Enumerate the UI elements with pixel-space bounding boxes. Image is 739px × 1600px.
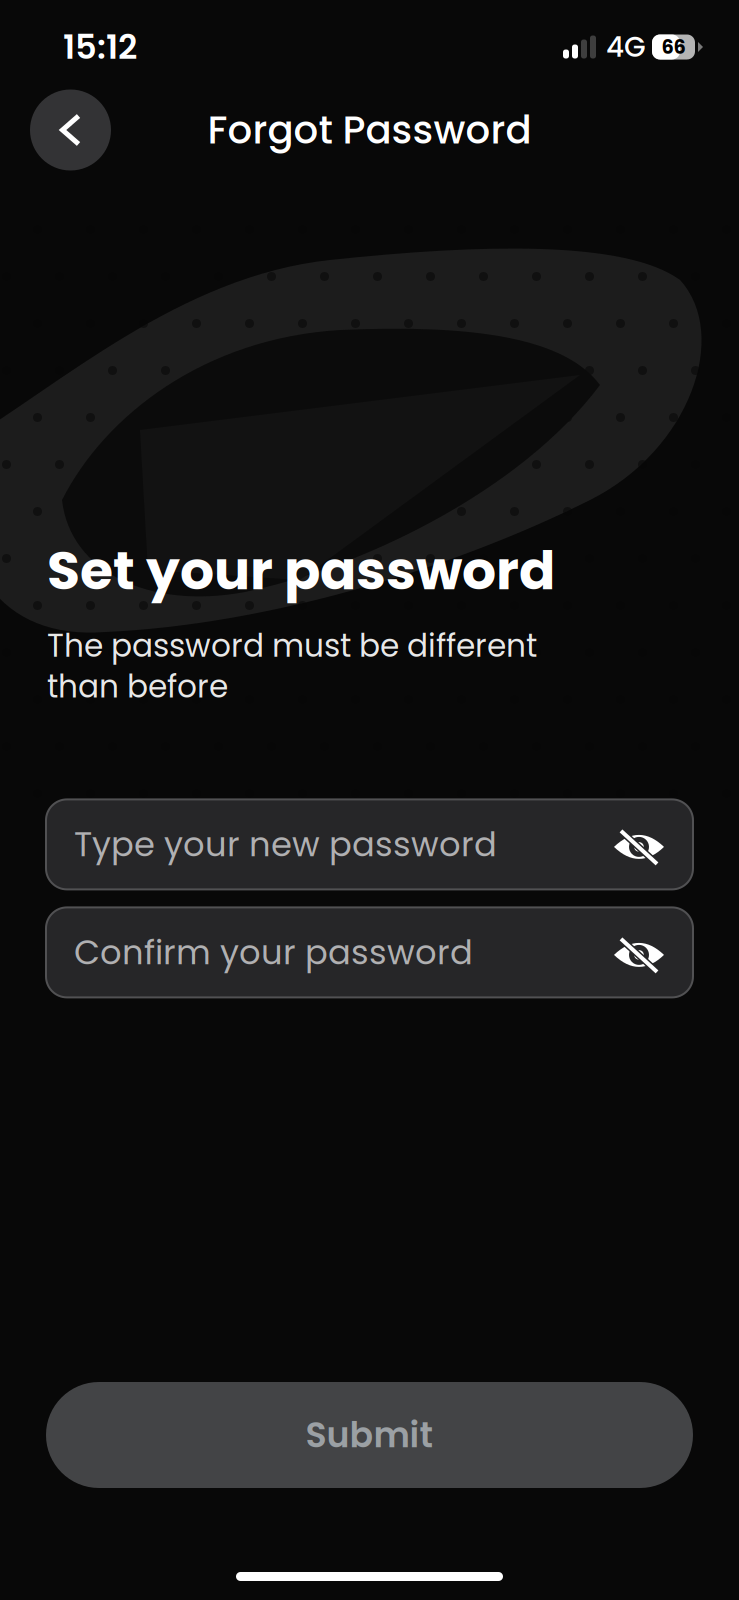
staticText: Confirm your password xyxy=(74,929,473,976)
button[interactable]: Submit xyxy=(46,1382,693,1488)
staticText: Type your new password xyxy=(74,821,497,868)
staticText: Submit xyxy=(305,1411,433,1459)
staticText: 4G xyxy=(606,27,646,67)
button[interactable]: Back xyxy=(30,89,111,170)
button[interactable]: Show password xyxy=(613,822,665,867)
staticText: The password must be different xyxy=(47,624,537,668)
staticText: than before xyxy=(47,665,228,708)
staticText: 66 xyxy=(661,33,685,61)
staticText: Set your password xyxy=(47,533,555,608)
button[interactable]: Show password xyxy=(613,930,665,975)
staticText: 15:12 xyxy=(63,23,137,71)
staticText: Forgot Password xyxy=(207,103,531,157)
